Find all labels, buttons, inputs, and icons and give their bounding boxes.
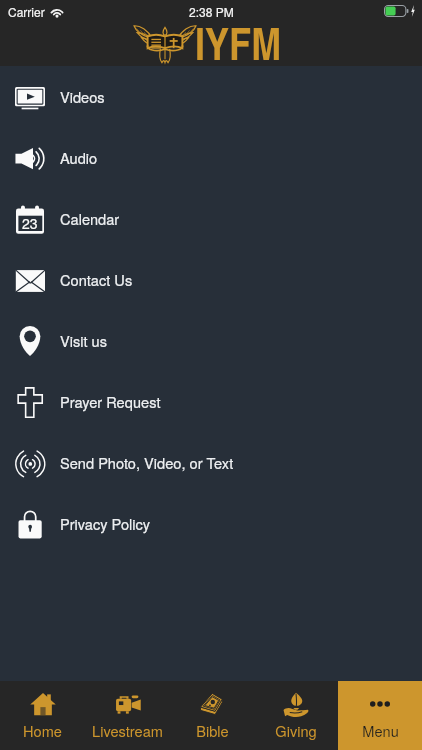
staticText: Audio <box>60 147 98 168</box>
staticText: Contact Us <box>60 269 133 290</box>
staticText: Prayer Request <box>60 391 161 412</box>
staticText: Menu <box>362 720 399 741</box>
button[interactable]: Prayer Request <box>0 371 422 432</box>
staticText: Home <box>23 720 62 741</box>
button[interactable]: Contact Us <box>0 249 422 310</box>
staticText: Privacy Policy <box>60 513 151 534</box>
button[interactable]: Send Photo, Video, or Text <box>0 432 422 493</box>
staticText: Livestream <box>92 720 163 741</box>
staticText: IYFM <box>195 11 282 73</box>
staticText: Calendar <box>60 208 120 229</box>
staticText: 2:38 PM <box>189 3 234 20</box>
button[interactable]: Bible <box>170 681 254 750</box>
button[interactable]: Visit us <box>0 310 422 371</box>
staticText: Carrier <box>8 3 45 20</box>
button[interactable]: Giving <box>254 681 338 750</box>
button[interactable]: Livestream <box>85 681 170 750</box>
button[interactable]: Audio <box>0 127 422 188</box>
button[interactable]: Home <box>0 681 85 750</box>
staticText: Giving <box>275 720 317 741</box>
staticText: 23 <box>22 213 38 233</box>
button[interactable]: Menu <box>338 681 422 750</box>
staticText: Videos <box>60 86 105 107</box>
button[interactable]: 23 <box>0 188 422 249</box>
button[interactable]: Videos <box>0 66 422 127</box>
staticText: Bible <box>196 720 229 741</box>
button[interactable]: Privacy Policy <box>0 493 422 554</box>
staticText: Send Photo, Video, or Text <box>60 452 234 473</box>
staticText: Visit us <box>60 330 108 351</box>
